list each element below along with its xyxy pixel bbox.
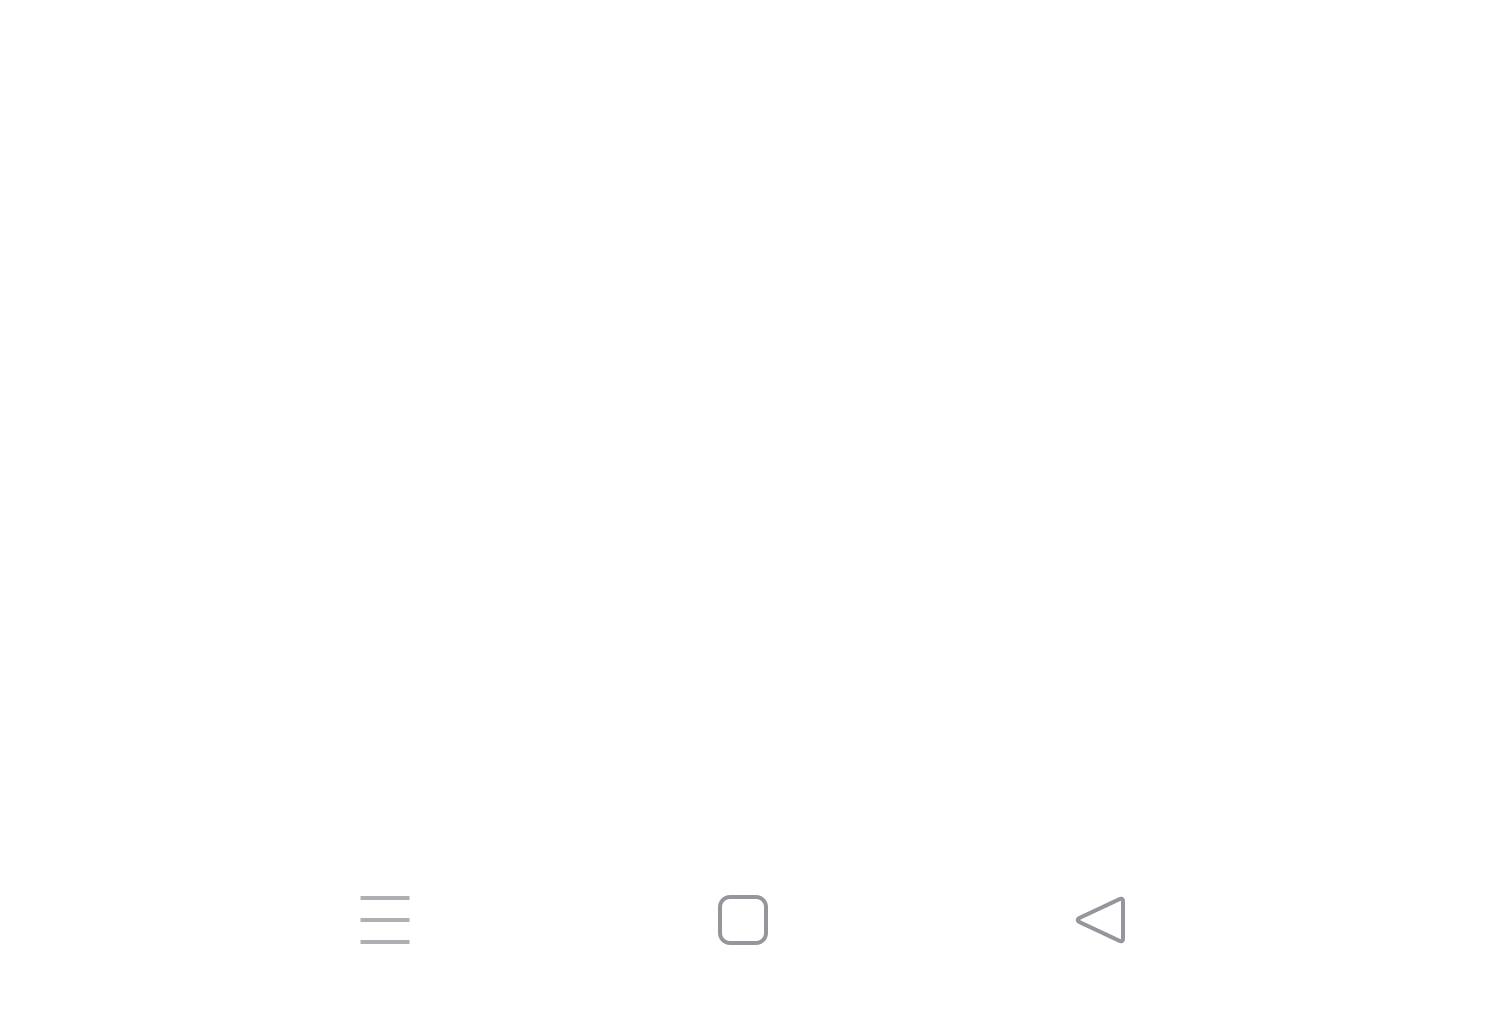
button[interactable]: Home bbox=[693, 870, 793, 970]
button[interactable]: Back bbox=[1049, 870, 1149, 970]
button[interactable]: Menu bbox=[335, 870, 435, 970]
